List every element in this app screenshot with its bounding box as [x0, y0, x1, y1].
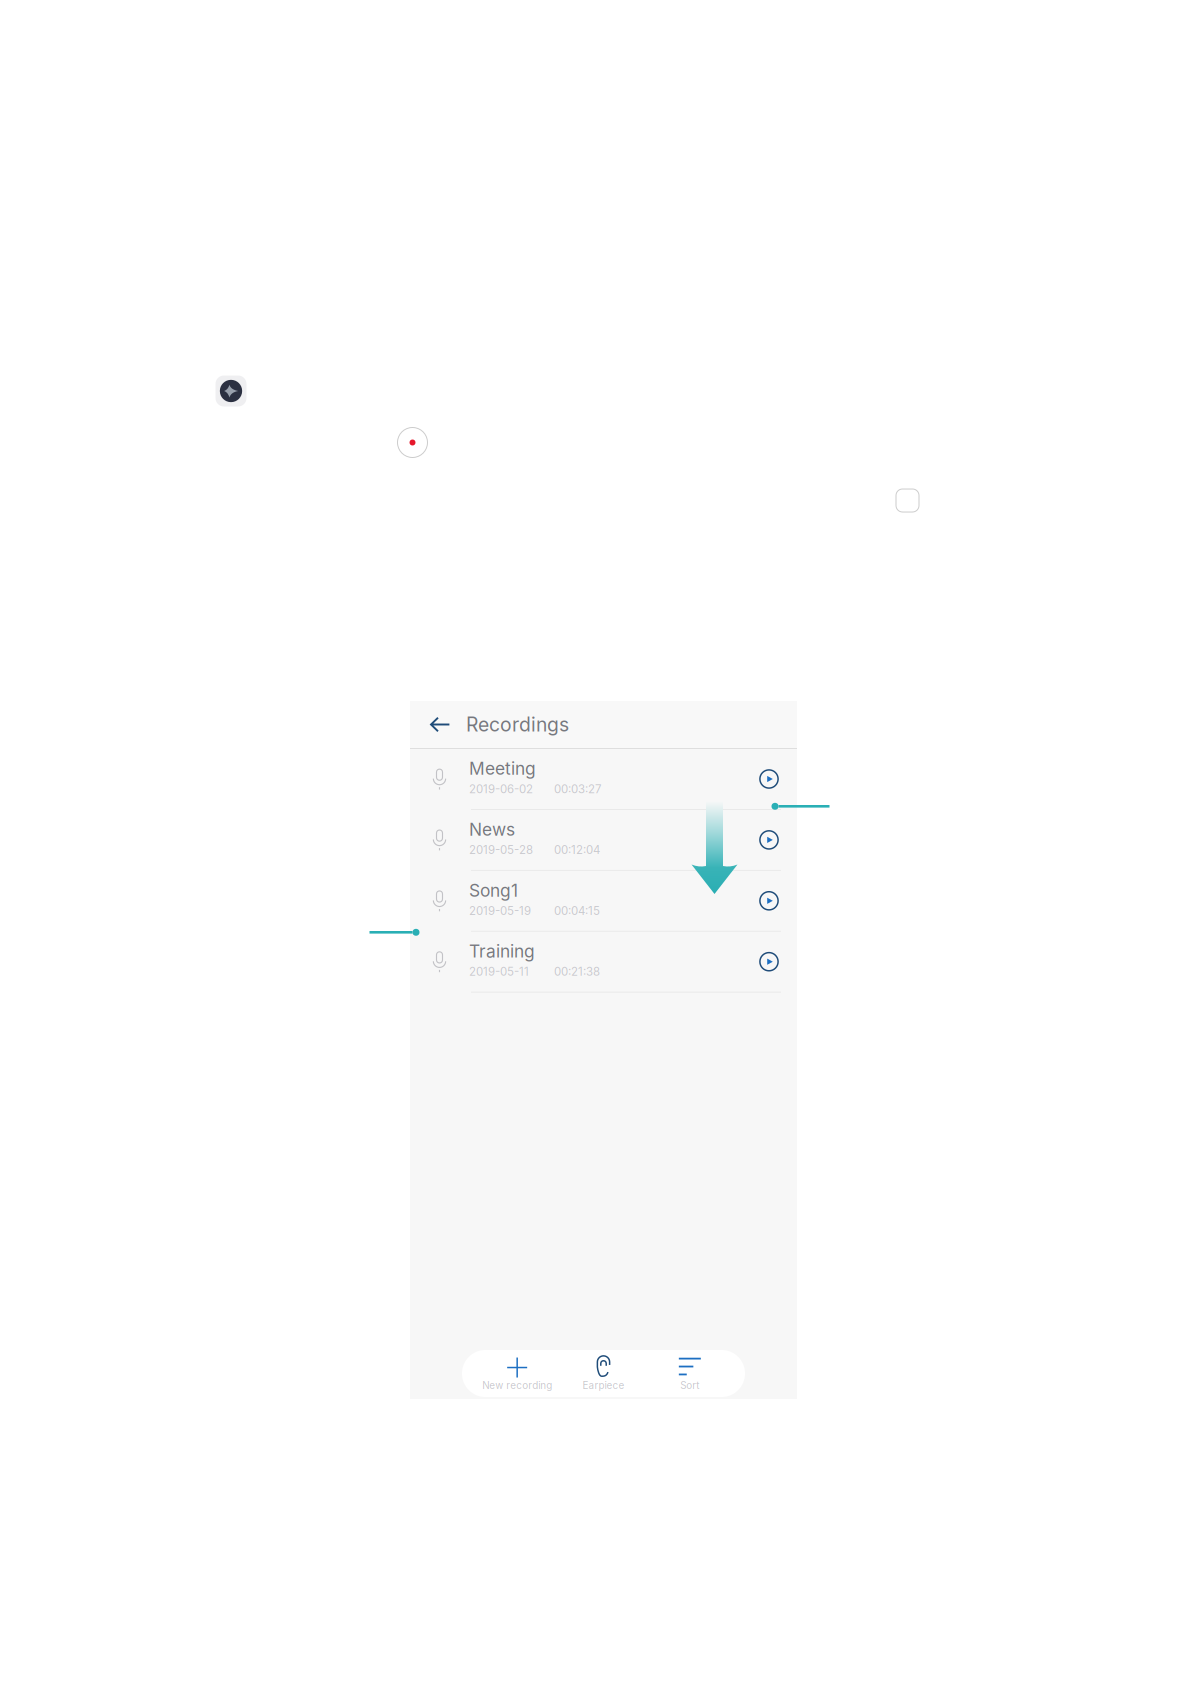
staticText: Sort — [680, 1379, 699, 1391]
staticText: 2019-05-19 — [469, 904, 531, 918]
staticText: News — [469, 819, 515, 840]
button[interactable]: New recording — [474, 1347, 560, 1399]
button[interactable]: Training — [410, 932, 797, 993]
staticText: Meeting — [469, 758, 536, 779]
staticText: 00:21:38 — [554, 965, 600, 979]
button[interactable]: Meeting — [410, 749, 797, 810]
staticText: New recording — [482, 1379, 552, 1391]
button[interactable]: Earpiece — [560, 1347, 647, 1399]
button[interactable]: Back — [410, 701, 450, 748]
staticText: 00:04:15 — [554, 904, 600, 918]
staticText: 2019-05-11 — [469, 965, 529, 979]
button[interactable]: Sort — [647, 1347, 733, 1399]
staticText: 00:12:04 — [554, 843, 600, 857]
staticText: Song1 — [469, 880, 518, 901]
staticText: Recordings — [466, 713, 569, 736]
staticText: Earpiece — [582, 1379, 624, 1391]
staticText: 2019-05-28 — [469, 843, 533, 857]
button[interactable]: Song1 — [410, 871, 797, 932]
staticText: 2019-06-02 — [469, 782, 533, 796]
staticText: Training — [469, 941, 535, 962]
button[interactable]: News — [410, 810, 797, 871]
staticText: 00:03:27 — [554, 782, 601, 796]
